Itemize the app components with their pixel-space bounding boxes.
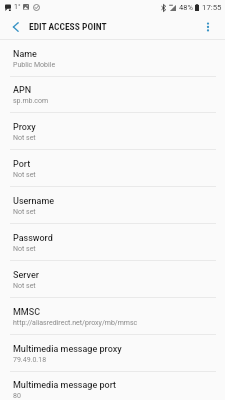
staticText: 17:55	[202, 3, 222, 12]
staticText: MMSC	[13, 307, 41, 318]
staticText: Not set	[13, 282, 36, 290]
staticText: Password	[13, 233, 53, 244]
button[interactable]: Port	[0, 150, 225, 187]
staticText: 79.49.0.18	[13, 356, 47, 364]
staticText: Not set	[13, 245, 36, 253]
staticText: EDIT ACCESS POINT	[29, 21, 107, 32]
staticText: Multimedia message proxy	[13, 344, 122, 355]
staticText: Not set	[13, 171, 36, 179]
staticText: 1°	[14, 3, 21, 11]
button[interactable]: Username	[0, 187, 225, 224]
button[interactable]: Multimedia message proxy	[0, 335, 225, 372]
staticText: Not set	[13, 134, 36, 142]
staticText: Proxy	[13, 122, 36, 133]
staticText: Public Mobile	[13, 61, 56, 69]
button[interactable]: APN	[0, 76, 225, 113]
staticText: 48%	[179, 3, 193, 12]
staticText: Username	[13, 196, 55, 207]
button[interactable]: MMSC	[0, 298, 225, 335]
staticText: http://aliasredirect.net/proxy/mb/mmsc	[13, 319, 138, 327]
staticText: Server	[13, 270, 39, 281]
staticText: sp.mb.com	[13, 97, 49, 105]
staticText: Name	[13, 49, 37, 60]
staticText: Port	[13, 159, 31, 170]
staticText: Multimedia message port	[13, 380, 117, 391]
button[interactable]: Server	[0, 261, 225, 298]
staticText: 80	[13, 392, 21, 400]
staticText: APN	[13, 85, 32, 96]
button[interactable]: More options	[195, 14, 221, 39]
staticText: Not set	[13, 208, 36, 216]
button[interactable]: Password	[0, 224, 225, 261]
button[interactable]: Name	[0, 40, 225, 77]
button[interactable]: Multimedia message port	[0, 371, 225, 400]
button[interactable]: Navigate up	[2, 14, 28, 39]
button[interactable]: Proxy	[0, 113, 225, 150]
